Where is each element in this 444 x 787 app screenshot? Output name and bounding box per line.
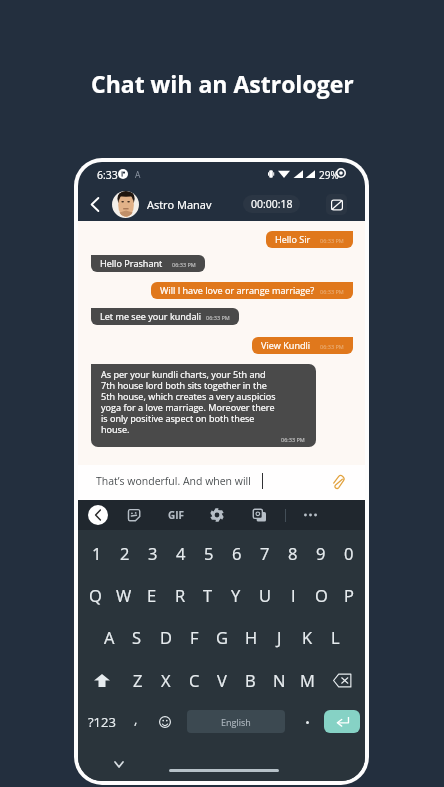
button[interactable]: 00:00:18 bbox=[243, 195, 300, 213]
staticText: , bbox=[134, 710, 138, 728]
button[interactable]: 0 bbox=[335, 541, 363, 565]
staticText: G bbox=[216, 626, 228, 648]
staticText: P bbox=[344, 584, 354, 606]
button[interactable]: J bbox=[265, 625, 293, 649]
staticText: Hello Sir bbox=[275, 233, 311, 245]
staticText: B bbox=[245, 669, 256, 691]
staticText: E bbox=[147, 584, 157, 606]
staticText: D bbox=[160, 626, 172, 648]
staticText: 06:33 PM bbox=[320, 343, 344, 350]
button[interactable]: Hide keyboard bbox=[112, 757, 126, 771]
button[interactable]: Emoji bbox=[155, 712, 175, 732]
button[interactable]: 8 bbox=[279, 541, 307, 565]
staticText: T bbox=[203, 584, 213, 606]
button[interactable]: H bbox=[237, 625, 265, 649]
button[interactable]: 4 bbox=[167, 541, 195, 565]
button[interactable]: W bbox=[110, 583, 138, 607]
button[interactable]: Image search bbox=[249, 505, 269, 525]
button[interactable]: Let me see your kundali bbox=[91, 308, 239, 325]
button[interactable]: U bbox=[251, 583, 279, 607]
staticText: 2 bbox=[120, 542, 130, 564]
button[interactable]: View Kundli bbox=[252, 337, 353, 354]
staticText: Q bbox=[89, 584, 102, 606]
button[interactable]: 3 bbox=[139, 541, 167, 565]
button[interactable]: E bbox=[138, 583, 166, 607]
button[interactable]: I bbox=[279, 583, 307, 607]
button[interactable]: Z bbox=[124, 668, 152, 692]
button[interactable]: L bbox=[321, 625, 349, 649]
staticText: C bbox=[189, 669, 200, 691]
button[interactable]: Turn off video bbox=[326, 194, 347, 215]
button[interactable]: M bbox=[293, 668, 321, 692]
button[interactable]: More options bbox=[298, 505, 322, 525]
button[interactable]: X bbox=[152, 668, 180, 692]
staticText: 3 bbox=[148, 542, 158, 564]
button[interactable]: N bbox=[265, 668, 293, 692]
staticText: 06:33 PM bbox=[206, 314, 230, 321]
staticText: English bbox=[221, 716, 251, 728]
staticText: A bbox=[135, 169, 141, 181]
button[interactable]: 5 bbox=[195, 541, 223, 565]
button[interactable]: R bbox=[166, 583, 194, 607]
button[interactable]: Astro Manav profile photo bbox=[112, 191, 139, 218]
button[interactable]: Enter bbox=[324, 710, 360, 733]
button[interactable]: F bbox=[180, 625, 208, 649]
button[interactable]: 7 bbox=[251, 541, 279, 565]
button[interactable]: C bbox=[180, 668, 208, 692]
staticText: As per your kundli charts, your 5th and … bbox=[101, 368, 276, 436]
button[interactable]: Hello Sir bbox=[266, 231, 353, 248]
button[interactable]: G bbox=[208, 625, 236, 649]
staticText: I bbox=[291, 584, 296, 606]
button[interactable]: A bbox=[95, 625, 123, 649]
button[interactable]: T bbox=[194, 583, 222, 607]
button[interactable]: Hello Prashant bbox=[91, 255, 205, 272]
staticText: 7 bbox=[260, 542, 270, 564]
staticText: 00:00:18 bbox=[251, 197, 293, 211]
button[interactable]: Back bbox=[88, 505, 108, 525]
button[interactable]: GIF bbox=[164, 505, 188, 525]
button[interactable]: Attach file bbox=[328, 472, 348, 492]
button[interactable]: Backspace bbox=[330, 669, 354, 691]
button[interactable]: Will I have love or arrange marriage? bbox=[151, 282, 353, 299]
staticText: GIF bbox=[168, 508, 185, 522]
staticText: V bbox=[217, 669, 227, 691]
button[interactable]: Shift bbox=[91, 669, 113, 691]
staticText: 0 bbox=[344, 542, 354, 564]
button[interactable]: Q bbox=[81, 583, 109, 607]
staticText: Astro Manav bbox=[147, 197, 212, 212]
button[interactable]: O bbox=[307, 583, 335, 607]
staticText: 4 bbox=[176, 542, 186, 564]
button[interactable]: Settings bbox=[207, 505, 227, 525]
button[interactable]: , bbox=[127, 711, 145, 733]
button[interactable]: English bbox=[187, 710, 285, 733]
staticText: View Kundli bbox=[261, 339, 311, 351]
staticText: That’s wonderful. And when will bbox=[96, 474, 251, 488]
staticText: 6:33 bbox=[97, 168, 118, 182]
button[interactable]: K bbox=[293, 625, 321, 649]
button[interactable]: As per your kundli charts, your 5th and … bbox=[91, 364, 316, 447]
button[interactable]: B bbox=[236, 668, 264, 692]
staticText: 06:33 PM bbox=[320, 288, 344, 295]
button[interactable]: Y bbox=[222, 583, 250, 607]
button[interactable]: 6 bbox=[223, 541, 251, 565]
staticText: Let me see your kundali bbox=[100, 310, 202, 322]
staticText: 1 bbox=[92, 542, 102, 564]
button[interactable]: Back bbox=[84, 193, 106, 215]
button[interactable]: Stickers bbox=[124, 505, 144, 525]
staticText: J bbox=[277, 626, 282, 648]
button[interactable]: 2 bbox=[111, 541, 139, 565]
button[interactable]: ?123 bbox=[83, 711, 121, 733]
button[interactable]: 1 bbox=[83, 541, 111, 565]
staticText: N bbox=[273, 669, 286, 691]
staticText: M bbox=[300, 669, 315, 691]
staticText: X bbox=[161, 669, 171, 691]
staticText: Y bbox=[231, 584, 241, 606]
staticText: 9 bbox=[316, 542, 326, 564]
button[interactable]: S bbox=[123, 625, 151, 649]
staticText: ?123 bbox=[88, 713, 116, 731]
staticText: S bbox=[132, 626, 142, 648]
button[interactable]: D bbox=[152, 625, 180, 649]
button[interactable]: V bbox=[208, 668, 236, 692]
button[interactable]: P bbox=[335, 583, 363, 607]
button[interactable]: 9 bbox=[307, 541, 335, 565]
